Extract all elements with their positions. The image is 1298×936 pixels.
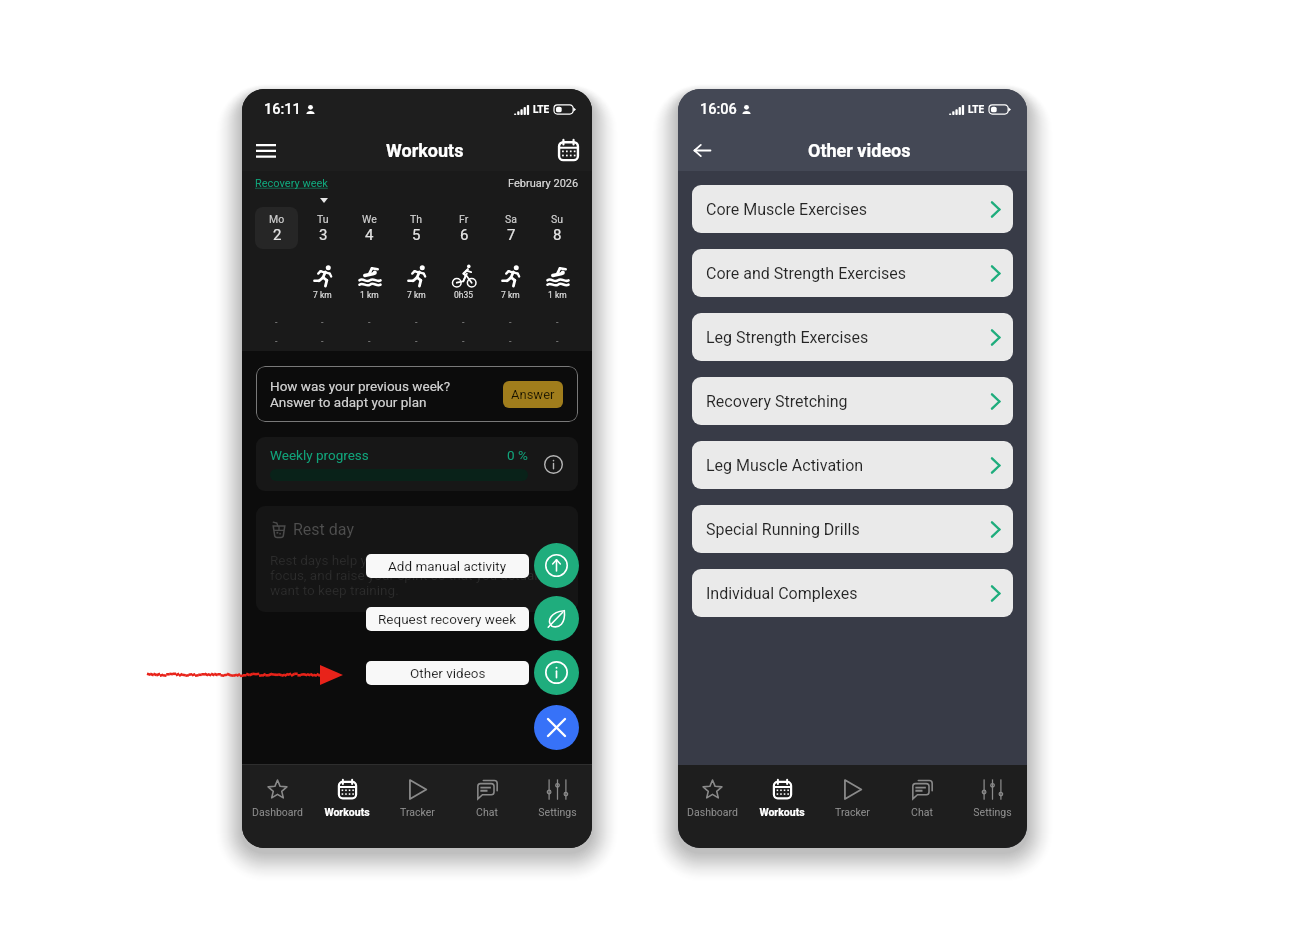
button[interactable]: Sa	[487, 207, 534, 347]
button[interactable]: Dashboard	[242, 765, 312, 848]
staticText: -	[368, 317, 371, 328]
button[interactable]: Tracker	[382, 765, 452, 848]
staticText: Request recovery week	[378, 611, 517, 627]
staticText: Settings	[538, 806, 577, 818]
staticText: 4	[365, 226, 374, 244]
staticText: Special Running Drills	[706, 520, 860, 539]
button[interactable]: Leg Muscle Activation	[692, 441, 1013, 489]
button[interactable]: Workouts	[747, 765, 817, 848]
staticText: 7 km	[407, 290, 426, 300]
staticText: Fr	[459, 213, 469, 225]
staticText: 1 km	[360, 290, 379, 300]
button[interactable]: Individual Complexes	[692, 569, 1013, 617]
button[interactable]: Th	[393, 207, 440, 347]
staticText: -	[509, 317, 512, 328]
staticText: 16:06	[700, 101, 737, 118]
button[interactable]: Answer	[503, 381, 563, 408]
staticText: -	[509, 336, 512, 347]
button[interactable]: Other videos	[366, 661, 529, 685]
staticText: February 2026	[508, 177, 579, 190]
staticText: 6	[460, 226, 469, 244]
staticText: -	[462, 317, 465, 328]
staticText: Settings	[973, 806, 1012, 818]
button[interactable]: Core and Strength Exercises	[692, 249, 1013, 297]
staticText: Answer to adapt your plan	[270, 394, 427, 410]
staticText: Rest days help you recover, regain focus…	[270, 552, 548, 598]
staticText: Core and Strength Exercises	[706, 264, 907, 283]
staticText: -	[556, 317, 559, 328]
button[interactable]: Recovery Stretching	[692, 377, 1013, 425]
staticText: Rest day	[293, 520, 354, 539]
button[interactable]: Fr	[440, 207, 487, 347]
button[interactable]: Request recovery week	[534, 596, 579, 641]
staticText: LTE	[533, 104, 550, 116]
button[interactable]: Core Muscle Exercises	[692, 185, 1013, 233]
button[interactable]: Menu	[256, 141, 276, 161]
button[interactable]: Close	[534, 705, 579, 750]
staticText: Tracker	[400, 806, 435, 818]
button[interactable]: Workouts	[312, 765, 382, 848]
staticText: 7 km	[501, 290, 520, 300]
staticText: Chat	[911, 806, 933, 818]
staticText: -	[368, 336, 371, 347]
button[interactable]: Other videos	[534, 650, 579, 695]
staticText: 3	[319, 226, 328, 244]
staticText: Add manual activity	[388, 558, 507, 574]
staticText: 7 km	[313, 290, 332, 300]
button[interactable]: Weekly progress	[256, 437, 578, 491]
button[interactable]: Settings	[522, 765, 592, 848]
staticText: Other videos	[410, 665, 486, 681]
staticText: -	[321, 336, 324, 347]
staticText: Tracker	[835, 806, 870, 818]
staticText: We	[362, 213, 377, 225]
staticText: How was your previous week?	[270, 378, 451, 394]
staticText: Recovery Stretching	[706, 392, 848, 411]
button[interactable]: Add manual activity	[534, 543, 579, 588]
button[interactable]: Special Running Drills	[692, 505, 1013, 553]
staticText: 2	[273, 226, 282, 244]
staticText: Individual Complexes	[706, 584, 858, 603]
staticText: Workouts	[386, 140, 464, 161]
staticText: Weekly progress	[270, 447, 369, 463]
staticText: -	[415, 317, 418, 328]
staticText: Th	[410, 213, 423, 225]
button[interactable]: Chat	[452, 765, 522, 848]
button[interactable]: Dashboard	[678, 765, 747, 848]
staticText: Sa	[505, 213, 517, 225]
button[interactable]: Recovery week	[255, 177, 328, 190]
staticText: Leg Muscle Activation	[706, 456, 864, 475]
button[interactable]: Leg Strength Exercises	[692, 313, 1013, 361]
button[interactable]: Chat	[887, 765, 957, 848]
staticText: -	[462, 336, 465, 347]
staticText: -	[275, 336, 278, 347]
staticText: Workouts	[759, 806, 805, 818]
staticText: LTE	[968, 104, 985, 116]
button[interactable]: Tu	[299, 207, 346, 347]
button[interactable]: Back	[692, 140, 713, 161]
staticText: 0 %	[507, 447, 528, 463]
button[interactable]: Tracker	[817, 765, 887, 848]
staticText: Answer	[511, 387, 555, 402]
staticText: Dashboard	[252, 806, 303, 818]
staticText: -	[415, 336, 418, 347]
button[interactable]: Request recovery week	[366, 607, 529, 631]
staticText: Mo	[269, 213, 285, 225]
button[interactable]: Su	[534, 207, 581, 347]
button[interactable]: Settings	[957, 765, 1027, 848]
button[interactable]: How was your previous week?	[256, 366, 578, 422]
button[interactable]: Add manual activity	[366, 554, 529, 578]
button[interactable]: Calendar	[557, 139, 580, 162]
staticText: -	[321, 317, 324, 328]
staticText: 7	[507, 226, 516, 244]
staticText: 8	[553, 226, 562, 244]
staticText: Workouts	[324, 806, 370, 818]
staticText: 5	[412, 226, 421, 244]
staticText: 0h35	[454, 290, 474, 300]
staticText: Core Muscle Exercises	[706, 200, 867, 219]
staticText: 16:11	[264, 101, 301, 118]
staticText: Dashboard	[687, 806, 738, 818]
staticText: Other videos	[808, 140, 911, 161]
button[interactable]: Mo	[253, 207, 299, 347]
staticText: Su	[551, 213, 564, 225]
button[interactable]: We	[346, 207, 393, 347]
